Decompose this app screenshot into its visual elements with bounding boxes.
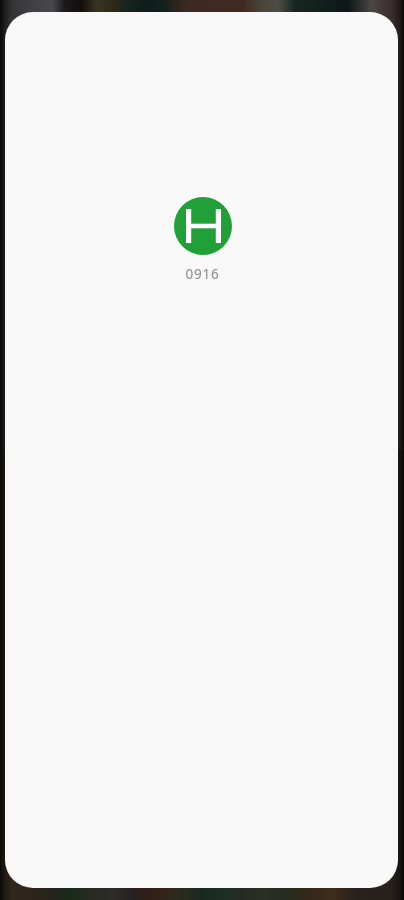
button[interactable]: App logo	[174, 197, 232, 255]
staticText: 0916	[185, 265, 220, 283]
